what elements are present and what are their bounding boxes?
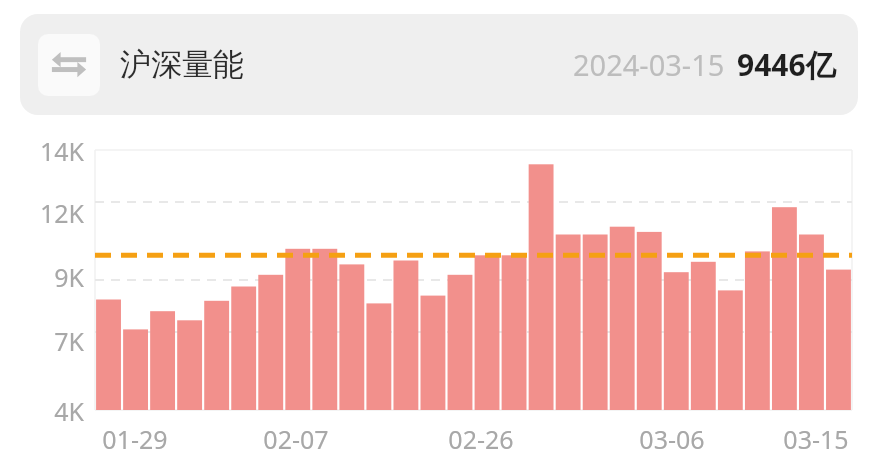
staticText: 4K <box>54 394 84 426</box>
staticText: 9446亿 <box>737 44 836 85</box>
staticText: 2024-03-15 <box>573 45 725 84</box>
staticText: 沪深量能 <box>120 45 244 84</box>
staticText: 01-29 <box>102 422 168 456</box>
button[interactable]: Swap <box>20 14 858 115</box>
staticText: 03-06 <box>639 422 705 456</box>
button[interactable]: Swap <box>38 34 100 96</box>
staticText: 02-26 <box>448 422 514 456</box>
staticText: 7K <box>54 324 84 356</box>
staticText: 14K <box>39 134 84 166</box>
staticText: 9K <box>54 260 84 292</box>
staticText: 03-15 <box>783 422 849 456</box>
staticText: 02-07 <box>263 422 329 456</box>
staticText: 12K <box>39 196 84 228</box>
